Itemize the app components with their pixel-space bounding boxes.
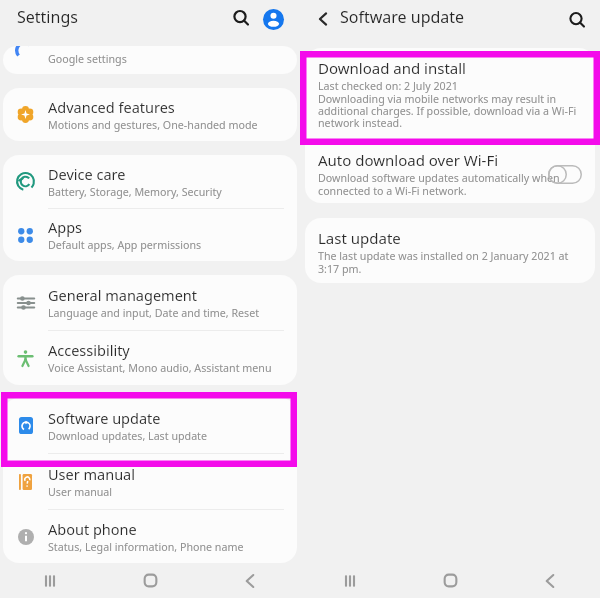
button[interactable]: Search	[224, 1, 258, 35]
staticText: Download and install	[318, 58, 466, 78]
button[interactable]: Advanced features	[3, 88, 297, 141]
button[interactable]: Download and install	[305, 48, 595, 145]
staticText: User manual	[48, 464, 135, 484]
button[interactable]: Accessibility	[3, 331, 297, 385]
staticText: Accessibility	[48, 340, 130, 360]
button[interactable]: Apps	[3, 209, 297, 261]
button[interactable]: Auto download over Wi-Fi toggle	[543, 157, 587, 191]
button[interactable]: About phone	[3, 510, 297, 563]
staticText: Auto download over Wi-Fi	[318, 150, 499, 170]
button[interactable]: Home	[400, 563, 500, 598]
button[interactable]: Software update	[3, 398, 297, 453]
button[interactable]: General management	[3, 275, 297, 330]
staticText: Advanced features	[48, 97, 175, 117]
staticText: Status, Legal information, Phone name	[48, 540, 244, 555]
button[interactable]: Last update	[305, 218, 595, 283]
staticText: Voice Assistant, Mono audio, Assistant m…	[48, 361, 272, 376]
staticText: About phone	[48, 519, 137, 539]
button[interactable]: Recents	[0, 563, 100, 598]
staticText: Download software updates automatically …	[318, 171, 560, 198]
staticText: Last update	[318, 228, 401, 248]
staticText: The last update was installed on 2 Janua…	[318, 249, 569, 276]
button[interactable]: Search	[560, 3, 594, 37]
button[interactable]: Back	[200, 563, 300, 598]
staticText: Software update	[48, 408, 161, 428]
button[interactable]: Back	[308, 4, 338, 34]
staticText: Settings	[17, 6, 78, 28]
button[interactable]: Recents	[300, 563, 400, 598]
staticText: General management	[48, 285, 198, 305]
button[interactable]: User manual	[3, 454, 297, 509]
staticText: Battery, Storage, Memory, Security	[48, 185, 222, 200]
button[interactable]: Back	[500, 563, 600, 598]
staticText: Default apps, App permissions	[48, 238, 202, 253]
staticText: Software update	[340, 6, 465, 28]
staticText: Device care	[48, 164, 126, 184]
button[interactable]: Home	[100, 563, 200, 598]
staticText: Google settings	[48, 52, 127, 67]
staticText: Apps	[48, 217, 83, 237]
button[interactable]: Account	[256, 2, 291, 37]
staticText: Motions and gestures, One-handed mode	[48, 118, 258, 133]
staticText: User manual	[48, 485, 113, 500]
staticText: Language and input, Date and time, Reset	[48, 306, 260, 321]
button[interactable]: Google settings	[3, 46, 297, 74]
staticText: Download updates, Last update	[48, 429, 208, 444]
button[interactable]: Device care	[3, 155, 297, 208]
button[interactable]: Auto download over Wi-Fi	[305, 145, 595, 203]
staticText: Last checked on: 2 July 2021 Downloading…	[318, 79, 577, 130]
